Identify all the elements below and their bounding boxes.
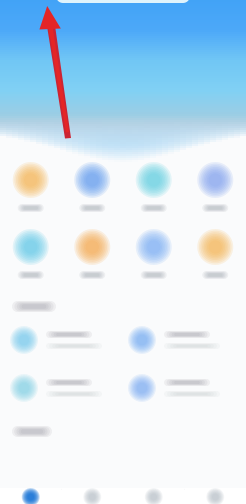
button[interactable]: Home [0,488,61,504]
button[interactable]: Shortcut [128,326,236,354]
button[interactable]: Service [0,162,61,212]
button[interactable]: Service [184,229,246,279]
button[interactable]: Shortcut [128,374,236,402]
button[interactable]: Shortcut [10,374,118,402]
button[interactable]: Tab [184,488,246,504]
button[interactable]: Shortcut [10,326,118,354]
button[interactable]: Service [123,229,184,279]
button[interactable]: Tab [123,488,184,504]
button[interactable]: Service [0,229,61,279]
button[interactable]: Service [61,229,123,279]
button[interactable]: Service [61,162,123,212]
button[interactable]: Service [184,162,246,212]
button[interactable]: Tab [61,488,123,504]
button[interactable]: Service [123,162,184,212]
